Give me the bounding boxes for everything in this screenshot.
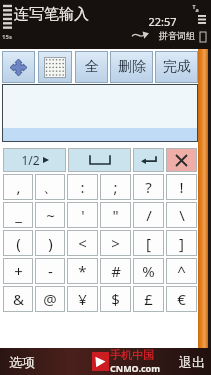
staticText: £	[144, 289, 153, 309]
staticText: ~	[46, 205, 55, 225]
staticText: -	[48, 261, 53, 281]
staticText: ^	[177, 261, 186, 281]
button[interactable]: 全	[75, 51, 108, 83]
button[interactable]: $	[100, 286, 131, 312]
button[interactable]: ;	[100, 174, 131, 200]
button[interactable]: 1/2	[3, 148, 66, 172]
staticText: [	[146, 233, 151, 253]
staticText: ]	[179, 233, 184, 253]
staticText: 1/2	[21, 152, 40, 168]
staticText: /	[146, 205, 152, 225]
staticText: 连写笔输入	[14, 5, 89, 24]
button[interactable]: #	[100, 258, 131, 284]
button[interactable]: €	[166, 286, 197, 312]
button[interactable]: Handwriting area	[2, 84, 198, 142]
staticText: >	[111, 233, 120, 253]
button[interactable]: Enter	[133, 148, 164, 172]
staticText: _	[15, 205, 22, 225]
button[interactable]: *	[67, 258, 98, 284]
staticText: (	[16, 233, 21, 253]
staticText: ¥	[78, 289, 87, 309]
button[interactable]: ¥	[67, 286, 98, 312]
button[interactable]: \	[166, 202, 197, 228]
staticText: !	[179, 177, 184, 197]
button[interactable]: &	[3, 286, 33, 312]
staticText: 拼音词组	[159, 30, 195, 41]
button[interactable]: /	[133, 202, 164, 228]
button[interactable]: _	[3, 202, 33, 228]
staticText: ;	[113, 177, 118, 197]
button[interactable]: 退出	[179, 354, 205, 370]
staticText: ?	[145, 177, 152, 197]
button[interactable]: @	[35, 286, 65, 312]
button[interactable]: %	[133, 258, 164, 284]
staticText: )	[48, 233, 53, 253]
button[interactable]: £	[133, 286, 164, 312]
button[interactable]: 删除	[110, 51, 153, 83]
staticText: <	[78, 233, 87, 253]
button[interactable]: "	[100, 202, 131, 228]
staticText: +	[14, 261, 23, 281]
button[interactable]: !	[166, 174, 197, 200]
button[interactable]: Grid	[38, 51, 72, 83]
button[interactable]: <	[67, 230, 98, 256]
button[interactable]: -	[35, 258, 65, 284]
staticText: 完成	[163, 58, 191, 76]
staticText: "	[112, 205, 119, 225]
staticText: '	[81, 205, 85, 225]
staticText: 22:57	[148, 14, 177, 29]
staticText: @	[43, 289, 57, 309]
staticText: #	[111, 261, 121, 281]
staticText: CNMO.com	[110, 362, 160, 374]
button[interactable]: [	[133, 230, 164, 256]
button[interactable]: Close	[166, 148, 197, 172]
staticText: \	[179, 205, 185, 225]
button[interactable]: 完成	[155, 51, 198, 83]
button[interactable]: +	[3, 258, 33, 284]
button[interactable]: )	[35, 230, 65, 256]
button[interactable]: :	[67, 174, 98, 200]
staticText: %	[142, 261, 155, 281]
staticText: 、	[43, 178, 58, 197]
staticText: 全	[85, 58, 99, 76]
staticText: &	[13, 289, 24, 309]
button[interactable]: ]	[166, 230, 197, 256]
button[interactable]: 、	[35, 174, 65, 200]
button[interactable]: 选项	[9, 354, 35, 370]
button[interactable]: ,	[3, 174, 33, 200]
button[interactable]: ?	[133, 174, 164, 200]
button[interactable]: ^	[166, 258, 197, 284]
staticText: :	[80, 177, 85, 197]
button[interactable]: ~	[35, 202, 65, 228]
button[interactable]: Space	[68, 148, 131, 172]
staticText: 15s	[2, 33, 12, 41]
staticText: *	[78, 261, 87, 281]
staticText: 删除	[118, 58, 146, 76]
staticText: 手机中国	[110, 348, 154, 362]
staticText: ,	[16, 177, 21, 197]
button[interactable]: Move	[2, 51, 35, 83]
button[interactable]: >	[100, 230, 131, 256]
button[interactable]: '	[67, 202, 98, 228]
button[interactable]: (	[3, 230, 33, 256]
staticText: €	[177, 289, 186, 309]
staticText: $	[111, 289, 120, 309]
staticText: ᵀₐ	[192, 2, 199, 13]
